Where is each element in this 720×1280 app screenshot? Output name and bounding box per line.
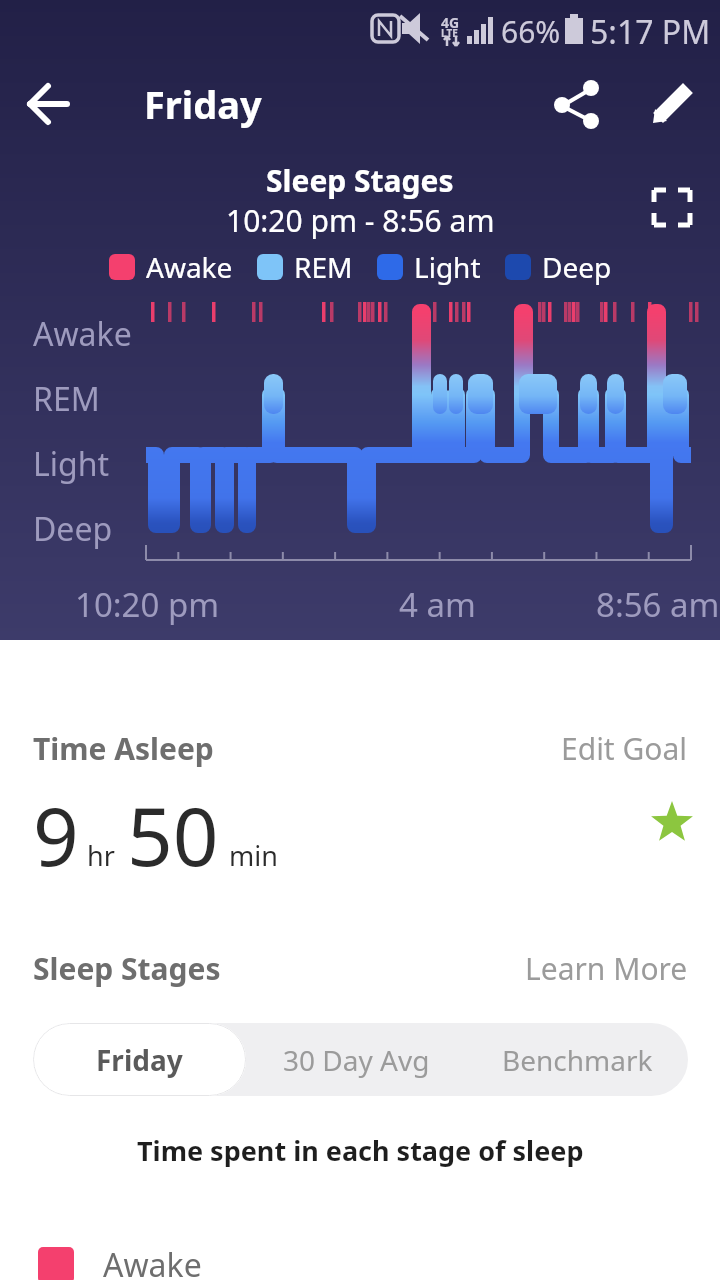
staticText: Time Asleep (33, 728, 214, 769)
button[interactable] (550, 78, 602, 130)
staticText: 30 Day Avg (283, 1041, 430, 1079)
staticText: 5:17 PM (590, 10, 711, 54)
staticText: Light (33, 442, 110, 486)
staticText: Awake (103, 1243, 202, 1280)
staticText: 8:56 am (596, 582, 720, 627)
staticText: 4 am (399, 582, 476, 627)
button[interactable]: Learn More (525, 948, 688, 989)
staticText: LTE (441, 26, 458, 40)
staticText: Time spent in each stage of sleep (137, 1132, 584, 1169)
staticText: Benchmark (502, 1041, 653, 1079)
staticText: 4G (441, 13, 460, 32)
staticText: Friday (144, 78, 262, 130)
staticText: 66% (501, 11, 561, 52)
staticText: Light (414, 248, 481, 286)
button[interactable]: 30 Day Avg (246, 1023, 467, 1096)
staticText: Sleep Stages (33, 948, 221, 989)
staticText: Awake (33, 312, 132, 356)
staticText: hr (87, 837, 115, 874)
staticText: Deep (542, 248, 612, 286)
button[interactable]: Friday (33, 1023, 246, 1096)
button[interactable]: Benchmark (467, 1023, 688, 1096)
staticText: Awake (146, 248, 233, 286)
staticText: 10:20 pm (75, 582, 220, 627)
button[interactable] (0, 78, 48, 130)
staticText: Sleep Stages (266, 160, 454, 201)
staticText: Friday (96, 1041, 183, 1079)
button[interactable] (646, 78, 698, 130)
staticText: 10:20 pm - 8:56 am (226, 200, 495, 241)
staticText: 9 (33, 780, 79, 889)
button[interactable]: Edit Goal (561, 728, 688, 769)
staticText: min (229, 837, 278, 874)
staticText: Deep (33, 507, 113, 551)
staticText: REM (294, 248, 353, 286)
staticText: REM (33, 377, 100, 421)
staticText: 50 (127, 780, 219, 889)
